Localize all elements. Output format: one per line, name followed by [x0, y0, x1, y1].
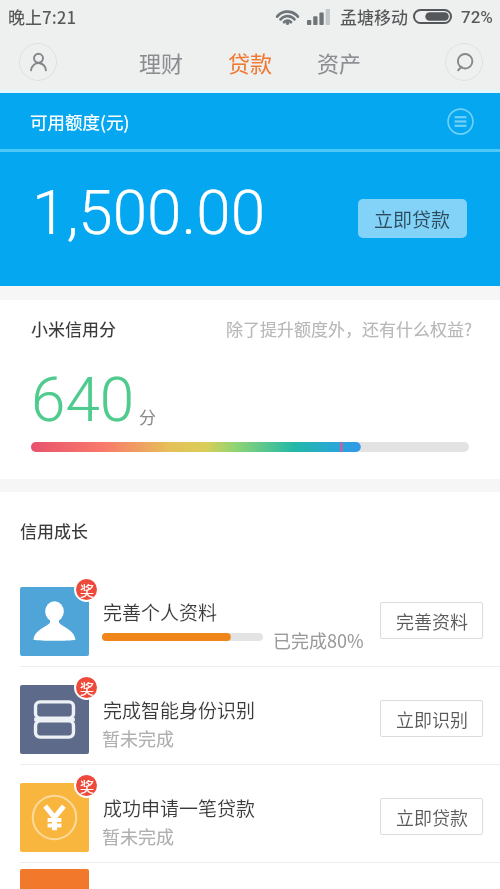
button[interactable]: Profile: [19, 43, 57, 81]
staticText: 完善资料: [396, 608, 468, 634]
staticText: 可用额度(元): [30, 109, 130, 134]
staticText: 奖: [80, 580, 94, 600]
staticText: 完善个人资料: [103, 598, 218, 626]
button[interactable]: 资产: [313, 37, 366, 87]
staticText: 立即贷款: [396, 804, 468, 830]
staticText: 除了提升额度外，还有什么权益?: [226, 316, 473, 341]
staticText: 分: [139, 404, 156, 429]
staticText: 640: [31, 363, 135, 436]
staticText: 贷款: [228, 46, 273, 78]
staticText: 理财: [139, 46, 184, 78]
staticText: 晚上7:21: [8, 4, 77, 29]
button[interactable]: 奖: [0, 667, 500, 765]
staticText: 成功申请一笔贷款: [103, 794, 256, 822]
staticText: 已完成80%: [273, 627, 364, 653]
staticText: 小米信用分: [31, 316, 116, 341]
staticText: 资产: [317, 46, 362, 78]
button[interactable]: 完善资料: [380, 602, 483, 639]
staticText: 暂未完成: [102, 823, 174, 849]
button[interactable]: 奖: [0, 569, 500, 667]
button[interactable]: 立即贷款: [380, 798, 483, 835]
button[interactable]: 贷款: [224, 37, 277, 87]
button[interactable]: [0, 863, 500, 889]
staticText: 立即识别: [396, 706, 468, 732]
button[interactable]: 除了提升额度外，还有什么权益?: [226, 316, 473, 341]
staticText: 1,500.00: [32, 176, 266, 249]
staticText: 孟塘移动: [340, 4, 408, 29]
button[interactable]: 立即识别: [380, 700, 483, 737]
staticText: 72%: [461, 7, 493, 27]
staticText: 信用成长: [20, 518, 88, 543]
staticText: 立即贷款: [374, 205, 451, 233]
button[interactable]: Customer service: [445, 43, 483, 81]
button[interactable]: 奖: [0, 765, 500, 863]
button[interactable]: Bill list: [447, 108, 474, 135]
staticText: 暂未完成: [102, 725, 174, 751]
staticText: 奖: [80, 776, 94, 796]
button[interactable]: 立即贷款: [358, 199, 467, 238]
staticText: 完成智能身份识别: [103, 696, 256, 724]
staticText: 奖: [80, 678, 94, 698]
button[interactable]: 理财: [135, 37, 188, 87]
